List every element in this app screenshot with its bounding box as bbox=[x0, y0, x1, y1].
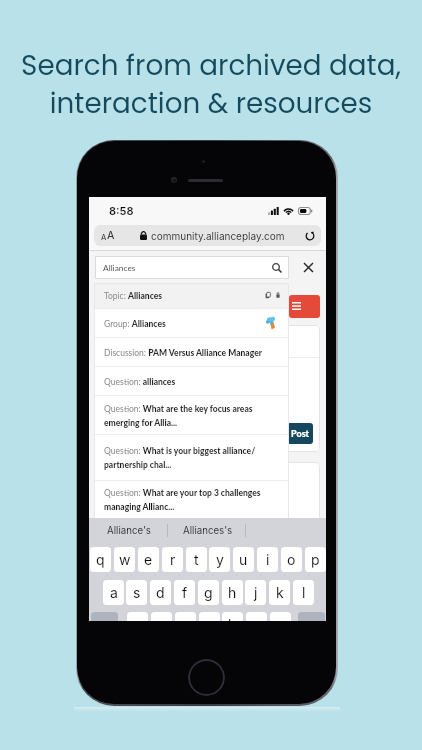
staticText: j bbox=[254, 584, 258, 601]
staticText: Discussion: PAM Versus Alliance Manager bbox=[104, 348, 262, 358]
staticText: A bbox=[107, 229, 115, 242]
button[interactable]: r bbox=[162, 547, 183, 572]
button[interactable]: b bbox=[222, 612, 243, 621]
button[interactable]: m bbox=[270, 612, 291, 621]
button[interactable]: Topic: Alliances bbox=[94, 283, 289, 309]
staticText: a bbox=[110, 584, 118, 601]
button[interactable]: t bbox=[186, 547, 207, 572]
button[interactable]: a bbox=[103, 580, 124, 605]
staticText: w bbox=[119, 551, 131, 568]
button[interactable]: p bbox=[305, 547, 326, 572]
staticText: 8:58 bbox=[109, 204, 134, 217]
button[interactable]: Alliance's bbox=[90, 518, 168, 544]
button[interactable]: Discussion: PAM Versus Alliance Manager bbox=[94, 338, 289, 367]
button[interactable]: u bbox=[233, 547, 254, 572]
staticText: Search from archived data, interaction &… bbox=[21, 46, 401, 123]
staticText: Question: alliances bbox=[104, 377, 176, 387]
staticText: q bbox=[96, 551, 105, 568]
staticText: l bbox=[302, 584, 306, 601]
staticText: t bbox=[194, 551, 199, 568]
staticText: p bbox=[311, 551, 320, 568]
button[interactable]: j bbox=[245, 580, 266, 605]
button[interactable]: g bbox=[198, 580, 219, 605]
button[interactable]: l bbox=[293, 580, 314, 605]
button[interactable]: Question: What is your biggest alliance/… bbox=[94, 435, 289, 481]
button[interactable]: Group: Alliances bbox=[94, 309, 289, 338]
staticText: Alliance's bbox=[107, 525, 151, 537]
button[interactable]: i bbox=[257, 547, 278, 572]
button[interactable]: c bbox=[175, 612, 196, 621]
button[interactable]: f bbox=[174, 580, 195, 605]
button[interactable]: Question: alliances bbox=[94, 367, 289, 396]
staticText: Alliances's bbox=[183, 525, 233, 537]
staticText: Topic: Alliances bbox=[104, 291, 162, 301]
button[interactable]: Close search bbox=[295, 256, 321, 279]
button[interactable]: h bbox=[222, 580, 243, 605]
button[interactable]: Menu bbox=[289, 295, 320, 318]
button[interactable]: n bbox=[246, 612, 267, 621]
button[interactable]: w bbox=[114, 547, 135, 572]
staticText: Question: What are the key focus areas e… bbox=[104, 404, 284, 428]
staticText: e bbox=[144, 551, 153, 568]
button[interactable]: o bbox=[281, 547, 302, 572]
button[interactable]: y bbox=[209, 547, 230, 572]
staticText: u bbox=[239, 551, 248, 568]
staticText: s bbox=[133, 584, 141, 601]
button[interactable]: k bbox=[269, 580, 290, 605]
button[interactable]: v bbox=[199, 612, 220, 621]
staticText: Group: Alliances bbox=[104, 319, 166, 329]
staticText: f bbox=[182, 584, 188, 601]
staticText: Post bbox=[291, 428, 310, 439]
staticText: i bbox=[266, 551, 270, 568]
staticText: g bbox=[204, 584, 213, 601]
button[interactable]: Post bbox=[287, 423, 313, 444]
button[interactable]: e bbox=[138, 547, 159, 572]
staticText: d bbox=[156, 584, 165, 601]
button[interactable]: Shift bbox=[91, 612, 118, 621]
staticText: h bbox=[228, 584, 237, 601]
button[interactable]: Alliances bbox=[95, 256, 289, 279]
staticText: Question: What are your top 3 challenges… bbox=[104, 488, 284, 512]
other: Search bbox=[272, 263, 282, 273]
staticText: community.allianceplay.com bbox=[151, 230, 285, 242]
button[interactable]: Alliances's bbox=[168, 518, 247, 544]
staticText: b bbox=[228, 616, 237, 621]
other: Reload bbox=[305, 231, 315, 241]
button[interactable]: q bbox=[90, 547, 111, 572]
button[interactable]: Backspace bbox=[298, 612, 325, 621]
button[interactable]: d bbox=[150, 580, 171, 605]
staticText: o bbox=[287, 551, 296, 568]
staticText: A bbox=[101, 233, 107, 242]
button[interactable]: x bbox=[151, 612, 172, 621]
button[interactable]: s bbox=[126, 580, 147, 605]
button[interactable]: z bbox=[127, 612, 148, 621]
staticText: Alliances bbox=[103, 263, 136, 273]
button[interactable]: Question: What are your top 3 challenges… bbox=[94, 481, 289, 519]
button[interactable]: Question: What are the key focus areas e… bbox=[94, 396, 289, 435]
staticText: Question: What is your biggest alliance/… bbox=[104, 446, 284, 470]
staticText: r bbox=[170, 551, 176, 568]
staticText: y bbox=[216, 551, 224, 568]
staticText: k bbox=[276, 584, 284, 601]
button[interactable]: A bbox=[94, 225, 321, 246]
